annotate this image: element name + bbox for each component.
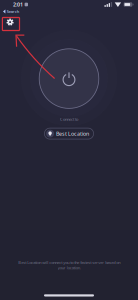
button[interactable]: Power xyxy=(39,49,99,108)
staticText: Search xyxy=(7,9,20,14)
staticText: Best Location xyxy=(56,130,89,137)
button[interactable]: Best Location xyxy=(44,128,94,139)
staticText: Connect to xyxy=(60,117,78,122)
button[interactable]: Settings xyxy=(6,18,14,26)
staticText: Best Location will connect you to the fa… xyxy=(18,260,120,270)
button[interactable]: Search xyxy=(0,8,22,14)
staticText: 2:01 xyxy=(13,1,23,8)
